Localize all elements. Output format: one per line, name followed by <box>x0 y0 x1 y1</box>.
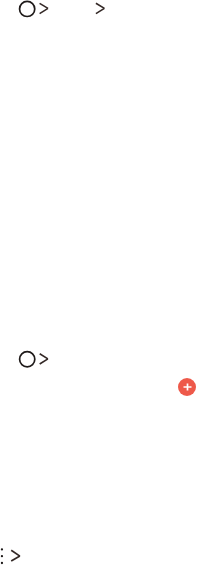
button[interactable]: Add <box>178 378 196 396</box>
button[interactable]: List item <box>16 350 50 369</box>
button[interactable]: Open <box>93 0 108 18</box>
button[interactable]: More options <box>0 546 22 565</box>
button[interactable]: Navigation menu <box>16 0 50 18</box>
